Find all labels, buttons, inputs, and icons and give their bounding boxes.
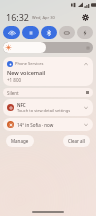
button[interactable]: Silent [3,88,93,97]
button[interactable]: Brightness [3,42,93,53]
button[interactable]: Expand [82,121,89,128]
button[interactable]: Expand [82,104,89,111]
staticText: 16:32 [6,11,30,23]
button[interactable]: NFC [3,99,93,116]
staticText: NFC [17,102,26,108]
button[interactable]: Quick setting [22,26,39,39]
staticText: Wed, Apr 30 [32,15,55,20]
button[interactable]: Collapse [82,60,89,67]
button[interactable]: Quick setting [41,26,57,39]
staticText: 14° in Sofia · now [17,122,82,128]
staticText: +1 800 [7,77,22,83]
button[interactable]: Quick setting [59,26,75,39]
button[interactable]: Clear all [63,135,90,147]
button[interactable]: 14° in Sofia · now [3,118,93,131]
staticText: Silent [7,90,19,96]
button[interactable]: Manage [6,135,34,147]
button[interactable]: Phone Services [3,57,93,86]
button[interactable]: Quick setting [77,26,93,39]
staticText: Phone Services [15,61,44,66]
staticText: Touch to view detail settings [17,108,71,113]
staticText: Manage [11,138,29,144]
staticText: Clear all [68,138,85,144]
button[interactable]: Quick setting [3,26,20,39]
staticText: New voicemail [7,69,46,76]
button[interactable]: Settings [79,11,91,23]
